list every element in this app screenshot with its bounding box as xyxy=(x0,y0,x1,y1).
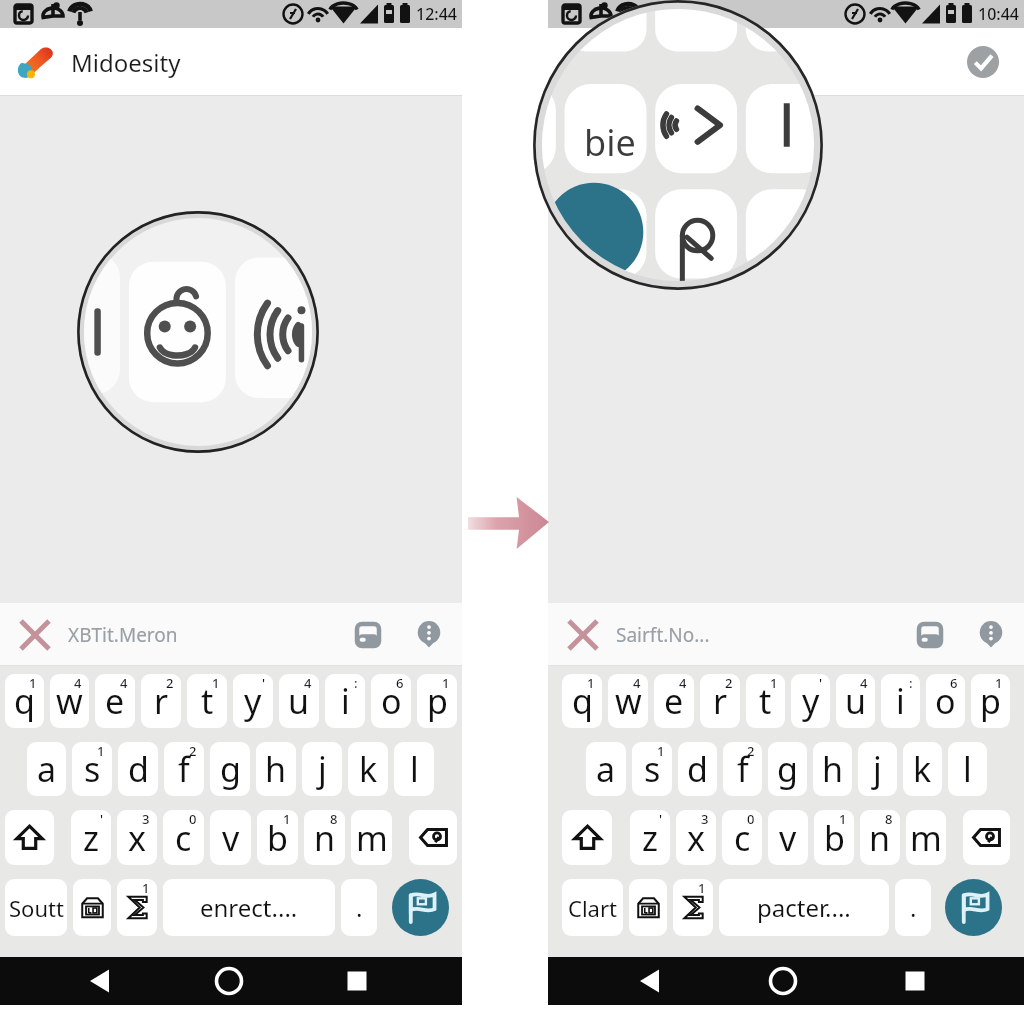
staticText: p xyxy=(427,678,448,724)
button[interactable]: w xyxy=(608,674,648,728)
staticText: 1 xyxy=(97,742,105,760)
button[interactable]: Done xyxy=(967,46,999,78)
button[interactable]: Soutt xyxy=(5,879,67,936)
button[interactable]: Emoji xyxy=(73,879,111,936)
staticText: z xyxy=(642,815,658,861)
staticText: o xyxy=(935,678,956,724)
button[interactable]: Emoji xyxy=(629,879,667,936)
button[interactable]: Shift xyxy=(562,810,612,865)
button[interactable]: Close xyxy=(14,614,56,656)
button[interactable]: p xyxy=(971,674,1010,728)
button[interactable]: s xyxy=(632,742,672,796)
button[interactable]: k xyxy=(348,742,388,796)
button[interactable]: x xyxy=(676,810,716,865)
button[interactable]: enrect.... xyxy=(163,879,335,936)
button[interactable]: Switch keyboard xyxy=(350,617,386,653)
button[interactable]: Backspace xyxy=(963,810,1010,865)
button[interactable]: k xyxy=(903,742,942,796)
button[interactable]: Home xyxy=(760,958,806,1004)
button[interactable]: r xyxy=(141,674,181,728)
button[interactable]: Clart xyxy=(562,879,623,936)
button[interactable]: n xyxy=(304,810,345,865)
button[interactable]: p xyxy=(417,674,457,728)
staticText: 1 xyxy=(657,742,665,760)
button[interactable]: h xyxy=(256,742,296,796)
button[interactable]: Back xyxy=(77,958,123,1004)
button[interactable]: f xyxy=(723,742,762,796)
button[interactable]: u xyxy=(279,674,319,728)
staticText: g xyxy=(777,746,798,792)
button[interactable]: Backspace xyxy=(409,810,457,865)
button[interactable]: d xyxy=(118,742,158,796)
staticText: bie xyxy=(584,118,636,167)
button[interactable]: x xyxy=(117,810,157,865)
button[interactable]: c xyxy=(163,810,204,865)
button[interactable]: Send xyxy=(945,879,1002,936)
button[interactable]: g xyxy=(210,742,250,796)
button[interactable]: z xyxy=(630,810,670,865)
button[interactable]: Recents xyxy=(892,958,938,1004)
button[interactable]: g xyxy=(768,742,807,796)
button[interactable]: t xyxy=(746,674,785,728)
button[interactable]: pacter.... xyxy=(719,879,889,936)
button[interactable]: e xyxy=(95,674,135,728)
button[interactable]: Recents xyxy=(334,958,380,1004)
staticText: d xyxy=(687,746,708,792)
staticText: f xyxy=(178,746,190,792)
button[interactable]: Close xyxy=(562,614,604,656)
button[interactable]: r xyxy=(700,674,740,728)
button[interactable]: a xyxy=(27,742,66,796)
button[interactable]: a xyxy=(586,742,626,796)
button[interactable]: More options xyxy=(972,616,1010,654)
button[interactable]: v xyxy=(210,810,251,865)
button[interactable]: n xyxy=(860,810,900,865)
button[interactable]: v xyxy=(768,810,808,865)
staticText: 1 xyxy=(212,674,220,692)
button[interactable]: Symbols xyxy=(117,879,157,936)
staticText: ' xyxy=(262,674,266,692)
button[interactable]: . xyxy=(895,879,931,936)
staticText: ' xyxy=(100,810,104,828)
button[interactable]: Switch keyboard xyxy=(912,617,948,653)
button[interactable]: y xyxy=(791,674,830,728)
button[interactable]: Back xyxy=(627,958,673,1004)
button[interactable]: q xyxy=(562,674,602,728)
button[interactable]: b xyxy=(257,810,298,865)
button[interactable]: Shift xyxy=(5,810,54,865)
staticText: c xyxy=(734,815,751,861)
button[interactable]: c xyxy=(722,810,762,865)
button[interactable]: i xyxy=(881,674,920,728)
staticText: n xyxy=(314,815,336,861)
button[interactable]: s xyxy=(72,742,112,796)
button[interactable]: y xyxy=(233,674,273,728)
button[interactable]: e xyxy=(654,674,694,728)
button[interactable]: j xyxy=(302,742,342,796)
button[interactable]: h xyxy=(813,742,852,796)
button[interactable]: m xyxy=(351,810,392,865)
button[interactable]: . xyxy=(341,879,377,936)
button[interactable]: q xyxy=(5,674,44,728)
button[interactable]: b xyxy=(814,810,854,865)
button[interactable]: o xyxy=(926,674,965,728)
button[interactable]: l xyxy=(394,742,434,796)
staticText: e xyxy=(664,678,684,724)
button[interactable]: Send xyxy=(392,879,449,936)
button[interactable]: j xyxy=(858,742,897,796)
button[interactable]: m xyxy=(906,810,946,865)
button[interactable]: z xyxy=(71,810,111,865)
button[interactable]: i xyxy=(325,674,365,728)
button[interactable]: More options xyxy=(410,616,448,654)
staticText: w xyxy=(56,678,83,724)
button[interactable]: Home xyxy=(206,958,252,1004)
staticText: i xyxy=(341,678,350,724)
button[interactable]: Symbols xyxy=(673,879,713,936)
button[interactable]: w xyxy=(50,674,89,728)
staticText: j xyxy=(873,746,882,792)
button[interactable]: f xyxy=(164,742,204,796)
button[interactable]: o xyxy=(371,674,411,728)
button[interactable]: t xyxy=(187,674,227,728)
staticText: 1 xyxy=(142,879,150,897)
button[interactable]: l xyxy=(948,742,987,796)
button[interactable]: d xyxy=(678,742,717,796)
button[interactable]: u xyxy=(836,674,875,728)
